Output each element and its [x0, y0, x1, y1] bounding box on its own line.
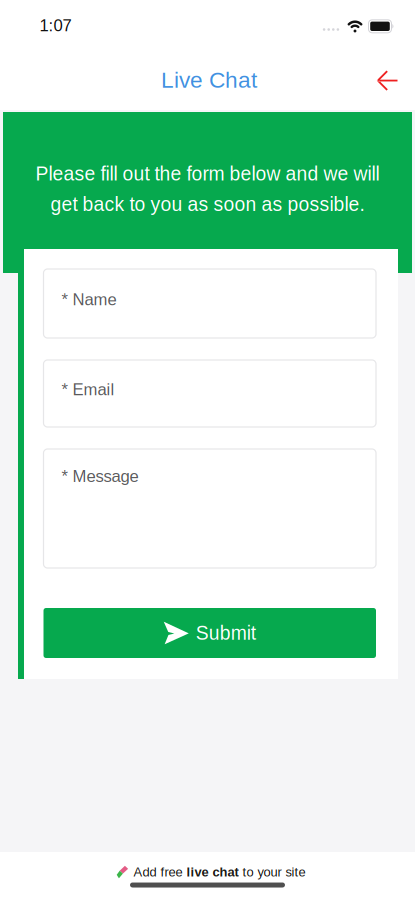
button[interactable]: * Name [43, 269, 376, 338]
staticText: * Email [61, 380, 114, 399]
button[interactable]: Add free live chat to your site [110, 861, 311, 883]
staticText: Add free live chat to your site [133, 865, 305, 879]
staticText: * Name [61, 290, 116, 309]
staticText: 1:07 [39, 16, 71, 35]
button[interactable]: * Message [43, 449, 376, 568]
button[interactable]: * Email [43, 360, 376, 427]
button[interactable]: Back [365, 58, 409, 102]
staticText: Live Chat [161, 67, 257, 93]
staticText: get back to you as soon as possible. [50, 193, 364, 215]
button[interactable]: Submit [43, 608, 376, 658]
staticText: Please fill out the form below and we wi… [35, 163, 379, 184]
staticText: * Message [61, 467, 138, 486]
staticText: Submit [196, 622, 256, 644]
